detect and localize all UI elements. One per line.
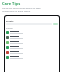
button[interactable] [6, 51, 58, 54]
button[interactable] [6, 36, 58, 39]
button[interactable] [6, 56, 58, 59]
button[interactable] [53, 23, 58, 25]
staticText: Popular [6, 27, 13, 30]
button[interactable] [6, 31, 58, 34]
staticText: We've got hand-picked advice to keep hou… [2, 7, 41, 13]
button[interactable] [6, 41, 58, 44]
staticText: Plants [6, 19, 14, 22]
button[interactable] [6, 46, 58, 49]
staticText: Care Tips [2, 1, 21, 6]
